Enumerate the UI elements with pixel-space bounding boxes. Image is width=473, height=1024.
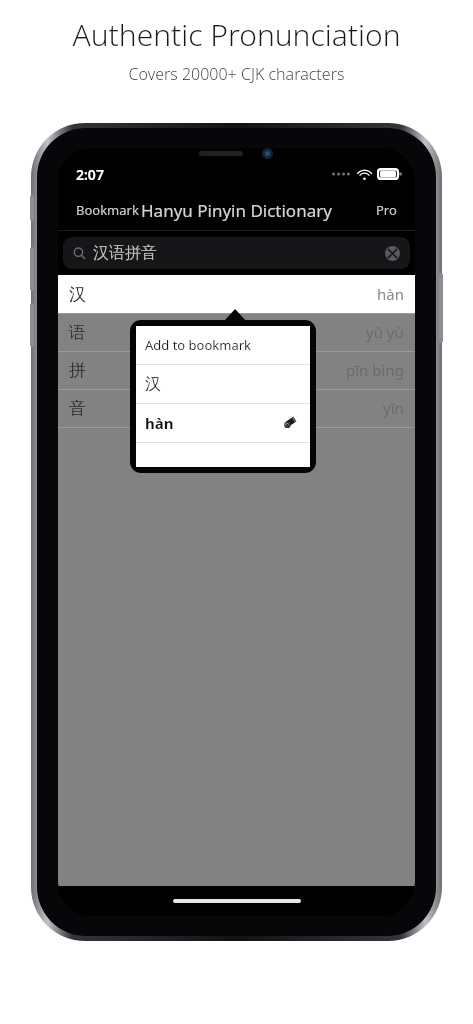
staticText: 语	[69, 322, 86, 343]
staticText: Authentic Pronunciation	[0, 14, 473, 55]
staticText: 拼	[69, 360, 86, 381]
button[interactable]: Hanyu Pinyin Dictionary	[137, 195, 336, 226]
staticText: Bookmark	[76, 201, 139, 219]
button[interactable]: Add to bookmark	[136, 326, 310, 364]
staticText: hàn	[377, 284, 404, 304]
button[interactable]: 语	[58, 313, 415, 351]
button[interactable]: 汉	[136, 365, 310, 403]
button[interactable]: Pro	[368, 195, 405, 225]
button[interactable]: 汉语拼音	[63, 237, 410, 269]
staticText: 音	[69, 398, 86, 419]
staticText: yīn	[383, 398, 404, 418]
staticText: 汉	[69, 284, 86, 305]
staticText: yǔ yù	[366, 322, 404, 342]
staticText: pīn bìng	[346, 360, 404, 380]
button[interactable]: Bookmark	[68, 195, 147, 225]
button[interactable]: 音	[58, 389, 415, 427]
button[interactable]: 汉	[58, 275, 415, 313]
staticText: Pro	[376, 201, 397, 219]
staticText: hàn	[145, 413, 174, 433]
button[interactable]: hàn	[136, 404, 310, 442]
staticText: Covers 20000+ CJK characters	[0, 63, 473, 85]
button[interactable]: Clear search	[378, 239, 406, 267]
button[interactable]: 拼	[58, 351, 415, 389]
staticText: 汉	[145, 374, 161, 394]
staticText: Add to bookmark	[145, 336, 252, 354]
other: Play pronunciation	[276, 410, 302, 436]
staticText: 汉语拼音	[93, 243, 157, 263]
staticText: Hanyu Pinyin Dictionary	[141, 199, 332, 222]
staticText: 2:07	[76, 165, 104, 184]
